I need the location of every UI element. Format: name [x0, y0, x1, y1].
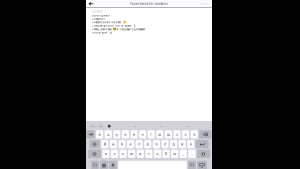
- staticText: к: [124, 132, 126, 136]
- staticText: о: [155, 142, 157, 146]
- button[interactable]: .: [188, 150, 195, 158]
- button[interactable]: ш: [156, 130, 163, 139]
- staticText: а: [130, 142, 132, 146]
- staticText: д: [173, 142, 175, 146]
- staticText: м: [130, 152, 133, 156]
- button[interactable]: щ: [165, 130, 172, 139]
- button[interactable]: е: [130, 130, 138, 139]
- button[interactable]: Redo: [159, 124, 164, 128]
- staticText: е: [133, 132, 135, 136]
- button[interactable]: ,: [180, 150, 187, 158]
- staticText: ф: [104, 142, 106, 146]
- staticText: ,: [183, 152, 184, 156]
- button[interactable]: Hide keyboard: [197, 161, 207, 169]
- button[interactable]: Shift: [88, 150, 101, 158]
- staticText: л: [164, 142, 166, 146]
- button[interactable]: с: [119, 150, 127, 158]
- button[interactable]: Text style: [90, 124, 95, 128]
- button[interactable]: ъ: [191, 130, 198, 139]
- staticText: Редактировать профиль: [129, 2, 168, 5]
- button[interactable]: Tab: [86, 130, 95, 139]
- button[interactable]: ч: [111, 150, 118, 158]
- staticText: Готово: [200, 2, 209, 5]
- staticText: • Настроение на нуле 😊: [91, 21, 125, 24]
- staticText: ц: [107, 132, 109, 136]
- button[interactable]: э: [187, 140, 194, 148]
- button[interactable]: з: [173, 130, 181, 139]
- staticText: О себе: [91, 10, 102, 13]
- button[interactable]: б: [162, 150, 170, 158]
- button[interactable]: ь: [154, 150, 161, 158]
- staticText: Aa: [99, 124, 103, 128]
- button[interactable]: More: [185, 124, 190, 128]
- staticText: ю: [173, 152, 176, 156]
- button[interactable]: в: [118, 140, 126, 148]
- button[interactable]: ы: [110, 140, 117, 148]
- staticText: ы: [112, 142, 115, 146]
- button[interactable]: а: [127, 140, 134, 148]
- button[interactable]: 123: [91, 161, 99, 169]
- staticText: Aa: [90, 124, 94, 128]
- staticText: т: [148, 152, 150, 156]
- button[interactable]: т: [145, 150, 152, 158]
- button[interactable]: й: [96, 130, 103, 139]
- button[interactable]: п: [136, 140, 143, 148]
- staticText: с: [122, 152, 124, 156]
- button[interactable]: у: [113, 130, 120, 139]
- button[interactable]: ю: [171, 150, 178, 158]
- button[interactable]: Shift: [197, 150, 210, 158]
- staticText: 123: [189, 164, 194, 167]
- button[interactable]: Dictation: [109, 161, 117, 169]
- staticText: 123: [92, 164, 97, 167]
- button[interactable]: м: [128, 150, 135, 158]
- staticText: з: [176, 132, 178, 136]
- button[interactable]: Готово: [197, 0, 212, 7]
- staticText: н: [142, 132, 144, 136]
- staticText: • Студент: [91, 17, 104, 20]
- staticText: ь: [156, 152, 158, 156]
- staticText: ч: [113, 152, 115, 156]
- staticText: • Всем удач 🎵: [91, 31, 111, 34]
- staticText: Всем привет!: [91, 14, 110, 17]
- staticText: ъ: [193, 132, 195, 136]
- staticText: г: [150, 132, 152, 136]
- staticText: п: [138, 142, 140, 146]
- staticText: х: [185, 132, 187, 136]
- button[interactable]: Undo: [133, 124, 138, 128]
- staticText: р: [147, 142, 149, 146]
- staticText: ш: [158, 132, 161, 136]
- button[interactable]: л: [161, 140, 169, 148]
- staticText: .: [191, 152, 192, 156]
- button[interactable]: ц: [105, 130, 112, 139]
- button[interactable]: Return: [196, 140, 209, 148]
- staticText: • Учусь, работаю 😎 и отдыхаю с друзьями: [91, 28, 145, 31]
- button[interactable]: х: [182, 130, 189, 139]
- button[interactable]: д: [170, 140, 177, 148]
- button[interactable]: о: [153, 140, 160, 148]
- button[interactable]: 123: [188, 161, 196, 169]
- staticText: • Люблю футбол, бег и лыжи 🏃: [91, 24, 135, 27]
- button[interactable]: г: [148, 130, 155, 139]
- button[interactable]: я: [102, 150, 109, 158]
- button[interactable]: и: [137, 150, 144, 158]
- button[interactable]: Caps lock: [89, 140, 100, 148]
- staticText: й: [99, 132, 101, 136]
- button[interactable]: ж: [179, 140, 186, 148]
- button[interactable]: Text size: [98, 124, 103, 128]
- staticText: ж: [181, 142, 184, 146]
- button[interactable]: р: [144, 140, 151, 148]
- staticText: у: [116, 132, 118, 136]
- button[interactable]: к: [122, 130, 129, 139]
- button[interactable]: Text color: [107, 124, 111, 128]
- button[interactable]: н: [139, 130, 146, 139]
- button[interactable]: ф: [101, 140, 108, 148]
- staticText: и: [139, 152, 141, 156]
- staticText: я: [105, 152, 107, 156]
- staticText: щ: [167, 132, 170, 136]
- button[interactable]: Delete: [199, 130, 212, 139]
- staticText: э: [190, 142, 192, 146]
- button[interactable]: Back: [86, 0, 96, 7]
- button[interactable]: Next keyboard: [100, 161, 108, 169]
- staticText: в: [121, 142, 123, 146]
